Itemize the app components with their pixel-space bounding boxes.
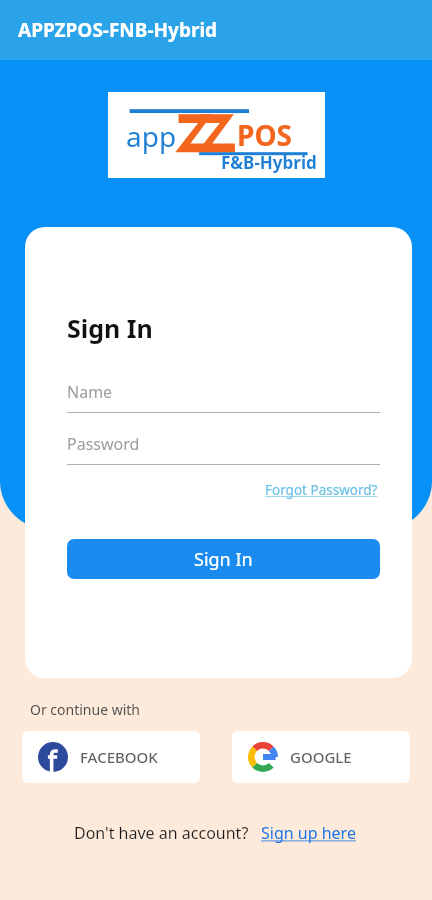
staticText: Don't have an account? [74, 822, 249, 844]
staticText: F&B-Hybrid [221, 151, 317, 174]
staticText: Or continue with [30, 700, 141, 719]
staticText: Forgot Password? [265, 481, 378, 499]
button[interactable]: Password [67, 433, 380, 465]
staticText: Sign In [67, 311, 153, 345]
button[interactable]: GOOGLE [232, 731, 410, 783]
staticText: Password [67, 433, 140, 455]
staticText: POS [237, 116, 292, 154]
staticText: FACEBOOK [80, 747, 158, 767]
button[interactable]: Name [67, 381, 380, 413]
button[interactable]: FACEBOOK [22, 731, 200, 783]
button[interactable]: Forgot Password? [263, 477, 380, 503]
staticText: Name [67, 381, 113, 403]
staticText: APPZPOS-FNB-Hybrid [18, 17, 218, 43]
staticText: Sign In [194, 547, 253, 572]
staticText: Sign up here [261, 822, 356, 844]
staticText: app [126, 117, 177, 155]
button[interactable]: Sign In [67, 539, 380, 579]
button[interactable]: Sign up here [259, 819, 358, 847]
staticText: GOOGLE [290, 747, 352, 767]
